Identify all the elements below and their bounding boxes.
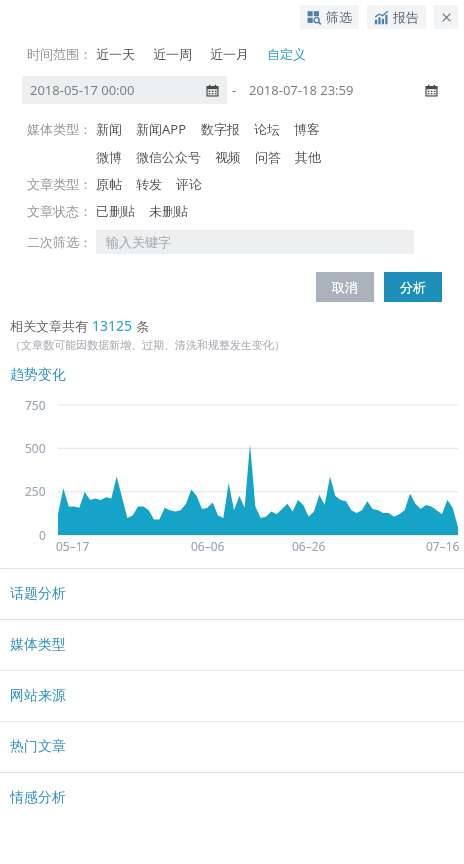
staticText: 媒体类型 [10, 636, 66, 654]
staticText: 二次筛选： [27, 234, 92, 250]
button[interactable]: 2018-07-18 23:59 [241, 76, 446, 104]
staticText: 分析 [400, 279, 426, 295]
button[interactable]: 近一周 [153, 46, 210, 62]
button[interactable]: 转发 [136, 176, 176, 192]
staticText: 趋势变化 [10, 366, 66, 384]
button[interactable]: 已删贴 [96, 203, 149, 219]
staticText: 博客 [294, 121, 320, 137]
button[interactable]: 其他 [295, 149, 321, 165]
button[interactable]: 分析 [384, 272, 442, 302]
button[interactable]: 情感分析 [0, 773, 464, 823]
staticText: 媒体类型： [27, 121, 92, 137]
button[interactable]: 论坛 [254, 121, 294, 137]
button[interactable]: 近一天 [96, 46, 153, 62]
staticText: 13125 [92, 316, 133, 335]
button[interactable]: 自定义 [267, 46, 306, 62]
button[interactable]: 筛选 [300, 5, 359, 29]
staticText: 视频 [215, 149, 241, 165]
staticText: 05–17 [56, 538, 90, 554]
staticText: 评论 [176, 176, 202, 192]
button[interactable]: 微信公众号 [136, 149, 215, 165]
button[interactable]: Close [434, 5, 458, 29]
staticText: 输入关键字 [106, 234, 171, 250]
staticText: 文章状态： [27, 203, 92, 219]
staticText: 微博 [96, 149, 122, 165]
staticText: 2018-07-18 23:59 [249, 81, 354, 99]
button[interactable]: 2018-05-17 00:00 [22, 76, 227, 104]
staticText: 数字报 [201, 121, 240, 137]
button[interactable]: 原帖 [96, 176, 136, 192]
staticText: 近一天 [96, 46, 135, 62]
staticText: 热门文章 [10, 738, 66, 756]
button[interactable]: 网站来源 [0, 671, 464, 721]
staticText: 新闻APP [136, 120, 187, 138]
button[interactable]: 问答 [255, 149, 295, 165]
button[interactable]: 媒体类型 [0, 620, 464, 670]
button[interactable]: 评论 [176, 176, 202, 192]
button[interactable]: 数字报 [201, 121, 254, 137]
staticText: 转发 [136, 176, 162, 192]
staticText: 0 [39, 527, 46, 543]
staticText: 06–06 [191, 538, 225, 554]
staticText: 论坛 [254, 121, 280, 137]
staticText: 原帖 [96, 176, 122, 192]
button[interactable]: 未删贴 [149, 203, 188, 219]
staticText: 250 [25, 483, 46, 499]
button[interactable]: 新闻APP [136, 120, 201, 138]
staticText: 新闻 [96, 121, 122, 137]
staticText: 近一周 [153, 46, 192, 62]
button[interactable]: 报告 [367, 5, 426, 29]
staticText: 文章类型： [27, 176, 92, 192]
button[interactable]: 近一月 [210, 46, 267, 62]
staticText: 07–16 [426, 538, 460, 554]
staticText: 筛选 [326, 9, 352, 25]
button[interactable]: 视频 [215, 149, 255, 165]
button[interactable]: 博客 [294, 121, 320, 137]
staticText: 500 [25, 440, 46, 456]
staticText: 微信公众号 [136, 149, 201, 165]
staticText: 取消 [332, 279, 358, 295]
button[interactable]: 取消 [316, 272, 374, 302]
button[interactable]: 话题分析 [0, 569, 464, 619]
staticText: 时间范围： [27, 46, 92, 62]
staticText: 2018-05-17 00:00 [30, 81, 135, 99]
staticText: 750 [25, 397, 46, 413]
button[interactable]: 输入关键字 [96, 230, 414, 254]
staticText: 自定义 [267, 46, 306, 62]
staticText: - [232, 81, 237, 99]
staticText: 未删贴 [149, 203, 188, 219]
button[interactable]: 微博 [96, 149, 136, 165]
staticText: （文章数可能因数据新增、过期、清洗和规整发生变化） [10, 338, 285, 352]
staticText: 问答 [255, 149, 281, 165]
staticText: 已删贴 [96, 203, 135, 219]
staticText: 其他 [295, 149, 321, 165]
staticText: 报告 [393, 9, 419, 25]
staticText: 话题分析 [10, 585, 66, 603]
staticText: 06–26 [292, 538, 326, 554]
button[interactable]: 热门文章 [0, 722, 464, 772]
staticText: 近一月 [210, 46, 249, 62]
staticText: 情感分析 [10, 789, 66, 807]
staticText: 条 [133, 317, 150, 335]
button[interactable]: 新闻 [96, 121, 136, 137]
staticText: 相关文章共有 [10, 317, 92, 335]
staticText: 网站来源 [10, 687, 66, 705]
